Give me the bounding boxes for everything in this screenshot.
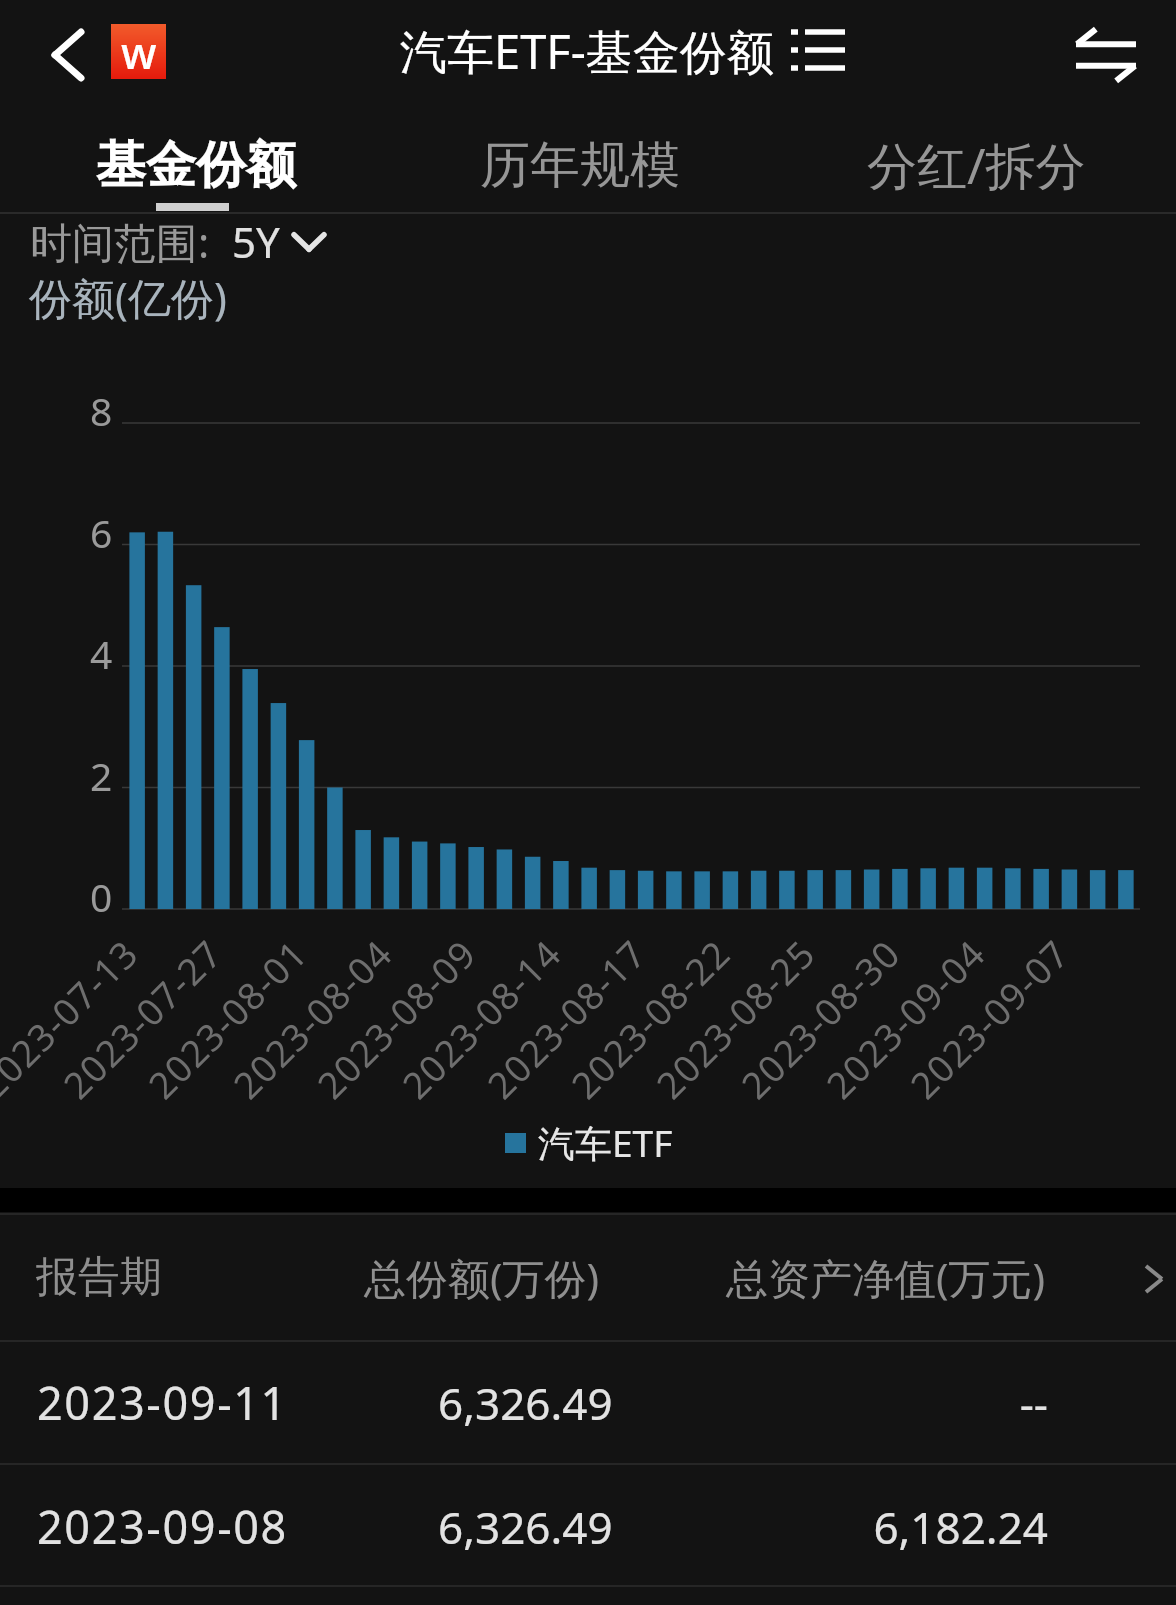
staticText: 5Y: [232, 213, 280, 270]
staticText: 2023-08-30: [729, 927, 910, 1108]
staticText: 6: [90, 506, 113, 559]
staticText: 汽车ETF: [538, 1117, 673, 1168]
staticText: 2023-09-07: [898, 927, 1079, 1108]
staticText: 2023-07-13: [0, 927, 148, 1108]
staticText: 2023-08-14: [390, 927, 571, 1108]
button[interactable]: Back: [30, 17, 106, 93]
button[interactable]: 5Y: [232, 213, 326, 270]
staticText: 8: [90, 384, 113, 437]
staticText: 历年规模: [480, 134, 680, 197]
staticText: --: [0, 1373, 1048, 1433]
button[interactable]: 2023-09-11: [0, 1341, 1176, 1464]
staticText: 6,182.24: [0, 1497, 1048, 1557]
staticText: 时间范围:: [30, 213, 210, 270]
button[interactable]: 基金份额: [0, 112, 392, 212]
staticText: 报告期: [36, 1251, 162, 1304]
staticText: 2023-08-25: [644, 927, 825, 1108]
button[interactable]: More columns: [1120, 1249, 1176, 1305]
staticText: 2023-07-27: [51, 927, 232, 1108]
staticText: 份额(亿份): [29, 268, 227, 327]
button[interactable]: 报告期: [0, 1214, 1176, 1340]
staticText: 2023-08-04: [221, 927, 402, 1108]
staticText: 2023-09-04: [814, 927, 995, 1108]
staticText: 0: [90, 870, 113, 923]
staticText: 2023-09-08: [37, 1496, 288, 1557]
button[interactable]: 2023-09-08: [0, 1465, 1176, 1588]
staticText: 汽车ETF-基金份额: [400, 19, 774, 83]
button[interactable]: Weibo: [111, 24, 166, 79]
staticText: 2023-08-22: [559, 927, 740, 1108]
staticText: 总份额(万份): [364, 1249, 600, 1306]
staticText: 2023-08-17: [475, 927, 656, 1108]
staticText: 4: [90, 627, 113, 680]
button[interactable]: Compare: [1066, 15, 1146, 95]
staticText: 2023-08-01: [136, 927, 317, 1108]
staticText: 6,326.49: [438, 1373, 613, 1433]
staticText: 2023-08-09: [305, 927, 486, 1108]
staticText: 6,326.49: [438, 1497, 613, 1557]
staticText: 基金份额: [96, 134, 296, 197]
staticText: 2023-09-11: [37, 1372, 288, 1433]
staticText: 分红/拆分: [867, 131, 1086, 199]
button[interactable]: 分红/拆分: [777, 112, 1176, 212]
staticText: w: [121, 22, 157, 77]
staticText: 2: [90, 749, 113, 802]
button[interactable]: 历年规模: [383, 112, 777, 212]
staticText: 总资产净值(万元): [726, 1249, 1046, 1306]
